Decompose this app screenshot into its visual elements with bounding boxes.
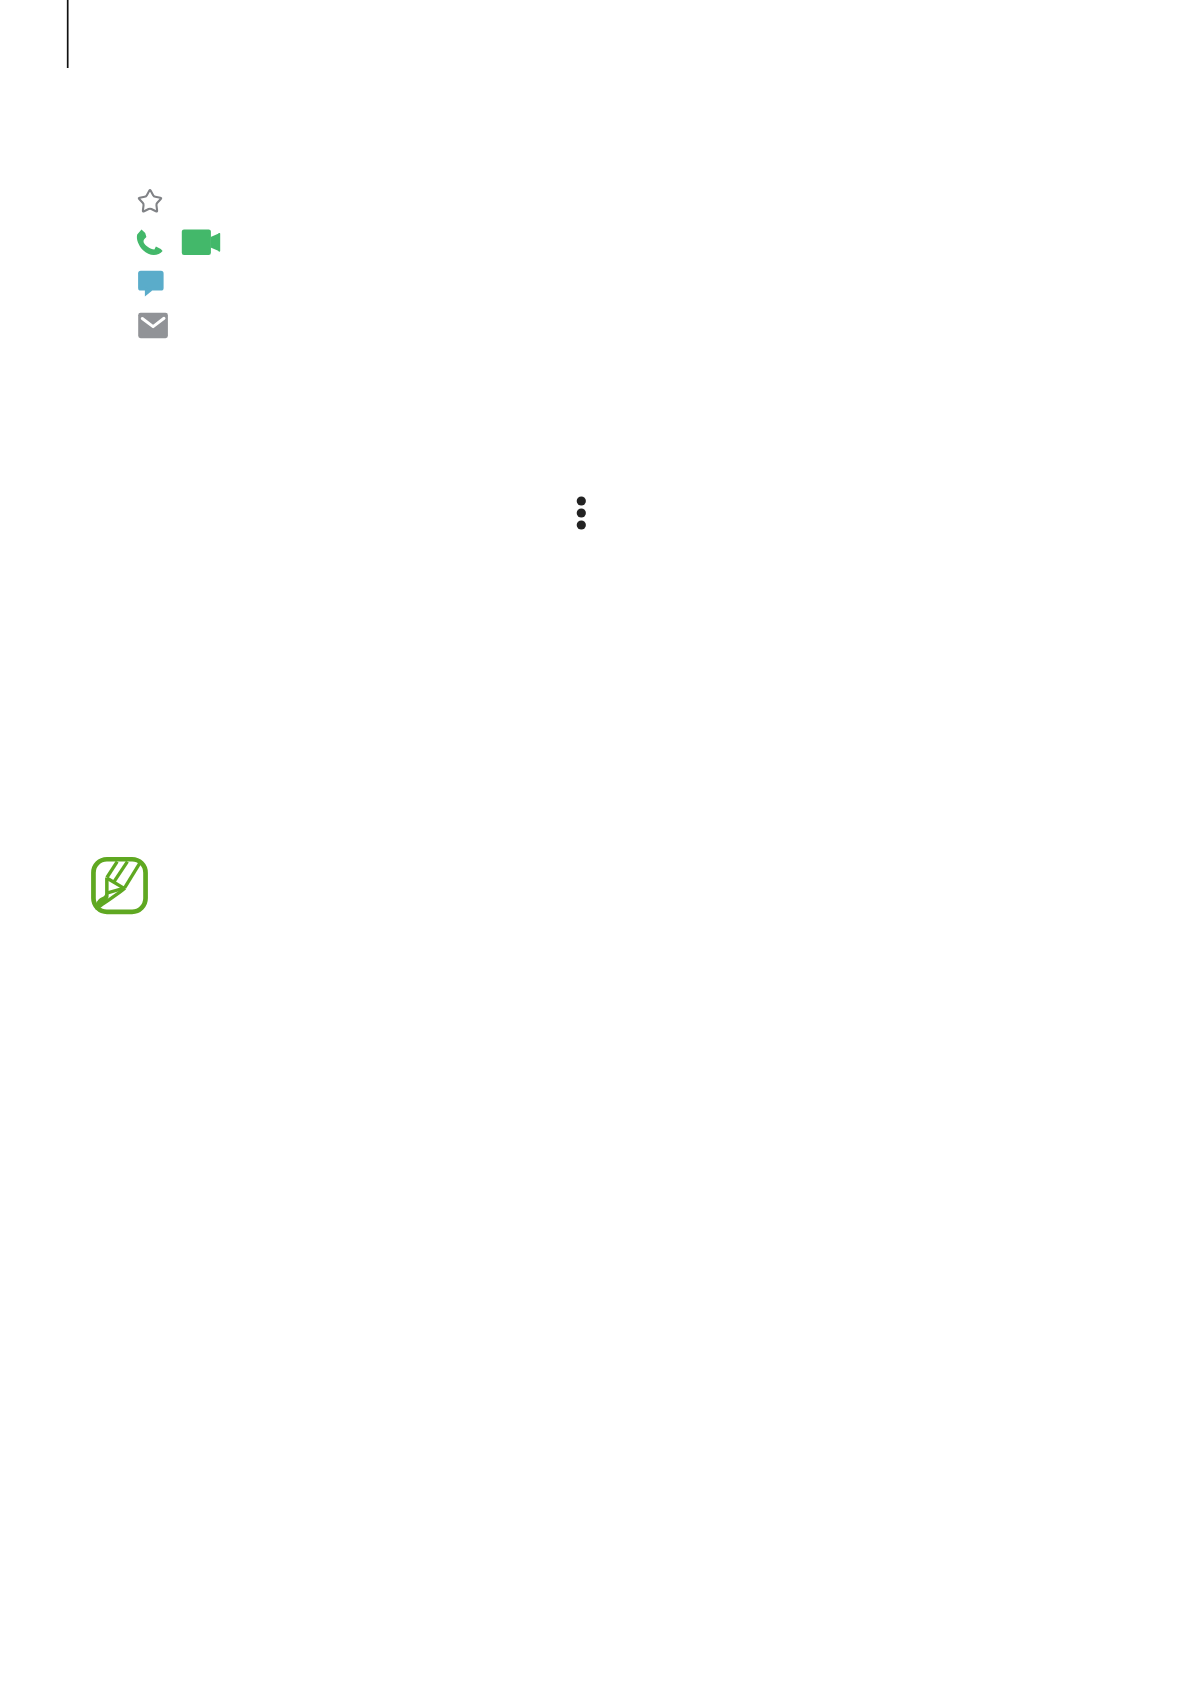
button[interactable]: Message — [136, 269, 166, 299]
button[interactable]: Email — [136, 311, 170, 340]
button[interactable]: Favourite — [135, 185, 165, 215]
button[interactable]: Call — [135, 227, 165, 258]
button[interactable]: Video call — [180, 228, 222, 257]
button[interactable]: More options — [572, 492, 590, 534]
button[interactable]: Samsung Notes — [89, 855, 150, 916]
